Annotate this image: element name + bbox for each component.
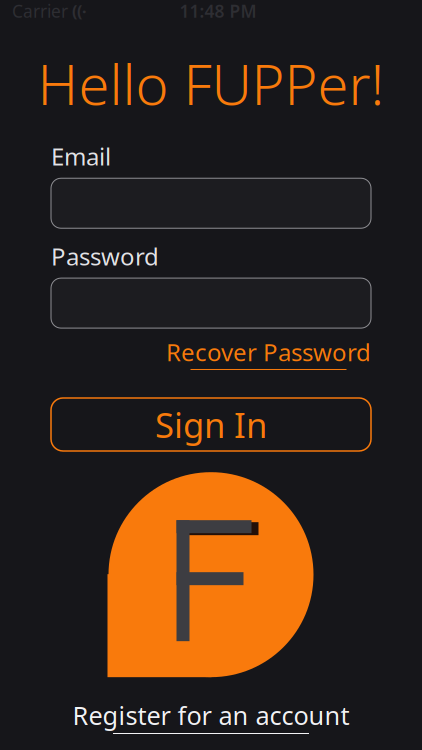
staticText: Email xyxy=(51,140,111,172)
staticText: Register for an account xyxy=(72,698,349,732)
staticText: Sign In xyxy=(155,401,267,447)
staticText: Carrier xyxy=(12,0,68,22)
button[interactable]: Sign In xyxy=(51,398,371,451)
staticText: Recover Password xyxy=(166,336,371,368)
button[interactable]: Register for an account xyxy=(72,698,349,734)
staticText: Password xyxy=(51,240,159,272)
staticText: 11:48 PM xyxy=(179,0,256,22)
staticText: Hello FUPPer! xyxy=(37,46,384,120)
staticText: ((· xyxy=(68,0,86,22)
button[interactable]: Recover Password xyxy=(166,336,371,370)
